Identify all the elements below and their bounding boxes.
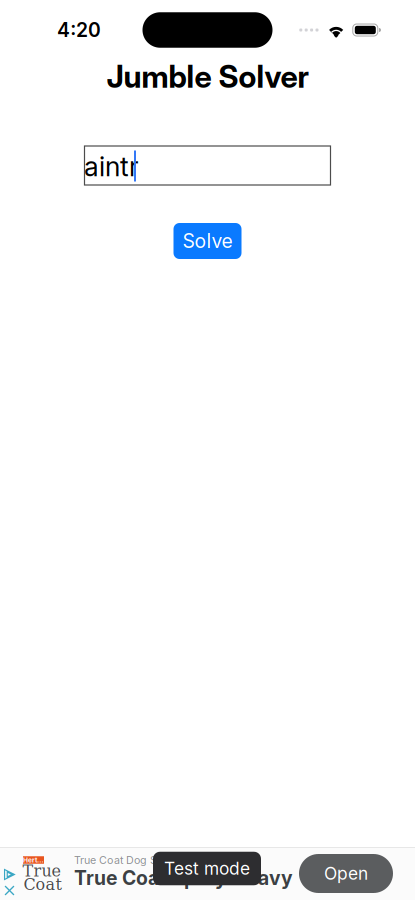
button[interactable]: Solve [173,223,241,259]
staticText: Open [324,863,368,884]
button[interactable]: Ad choices [1,866,17,882]
staticText: True Coat Spray Heavy [74,866,293,890]
staticText: Coat [23,875,61,894]
staticText: Jumble Solver [106,58,308,95]
staticText: True Coat Dog Shampoo [74,853,197,866]
staticText: Test mode [164,858,250,879]
staticText: 4:20 [57,18,101,42]
staticText: True [22,862,60,880]
button[interactable]: Close ad [1,883,17,898]
button[interactable]: Open [299,854,393,893]
staticText: aintr [84,150,139,183]
staticText: Hertz ♥ [23,856,44,864]
staticText: Solve [182,229,232,253]
